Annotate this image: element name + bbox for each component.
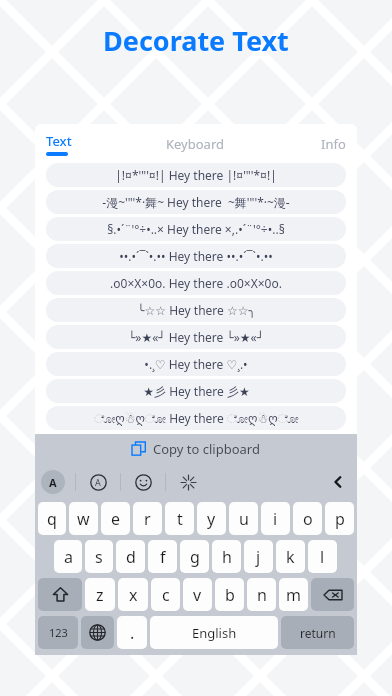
- staticText: Text: [46, 132, 72, 150]
- button[interactable]: w: [69, 502, 98, 535]
- button[interactable]: b: [215, 578, 244, 611]
- button[interactable]: m: [279, 578, 308, 611]
- button[interactable]: n: [247, 578, 276, 611]
- button[interactable]: q: [38, 502, 66, 535]
- button[interactable]: English: [150, 616, 278, 649]
- staticText: c: [162, 584, 170, 606]
- button[interactable]: ೋღ☃ღೋ Hey there ೋღ☃ღೋ: [46, 406, 346, 430]
- button[interactable]: •.¸♡ Hey there ♡¸.•: [46, 352, 346, 376]
- button[interactable]: Switch language: [81, 616, 114, 649]
- button[interactable]: l: [308, 540, 337, 573]
- button[interactable]: s: [85, 540, 113, 573]
- staticText: g: [190, 546, 200, 568]
- button[interactable]: §.•´¨'°÷•..× Hey there ×,.•´¨'°÷•..§: [46, 217, 346, 241]
- button[interactable]: ★彡 Hey there 彡★: [46, 379, 346, 403]
- staticText: a: [64, 546, 73, 568]
- button[interactable]: y: [197, 502, 226, 535]
- button[interactable]: t: [165, 502, 194, 535]
- staticText: Decorate Text: [103, 22, 289, 59]
- button[interactable]: k: [276, 540, 305, 573]
- staticText: d: [126, 546, 136, 568]
- staticText: r: [144, 508, 151, 530]
- staticText: ╰☆☆ Hey there ☆☆╮: [137, 302, 256, 318]
- button[interactable]: Emoticons: [131, 470, 155, 494]
- staticText: j: [256, 546, 261, 568]
- staticText: s: [95, 546, 103, 568]
- button[interactable]: Backspace: [311, 578, 354, 611]
- button[interactable]: r: [133, 502, 162, 535]
- staticText: ••.•´¯`•.•• Hey there ••.•´¯`•.••: [119, 248, 273, 264]
- button[interactable]: └»★«┘ Hey there └»★«┘: [46, 325, 346, 349]
- button[interactable]: c: [151, 578, 180, 611]
- button[interactable]: p: [325, 502, 354, 535]
- staticText: ★彡 Hey there 彡★: [143, 383, 250, 399]
- button[interactable]: z: [85, 578, 115, 611]
- button[interactable]: Keyboard: [139, 135, 252, 153]
- button[interactable]: ••.•´¯`•.•• Hey there ••.•´¯`•.••: [46, 244, 346, 268]
- staticText: A: [49, 475, 57, 490]
- staticText: └»★«┘ Hey there └»★«┘: [128, 329, 264, 345]
- staticText: h: [222, 546, 232, 568]
- button[interactable]: .o0×X×0o. Hey there .o0×X×0o.: [46, 271, 346, 295]
- button[interactable]: a: [54, 540, 82, 573]
- staticText: p: [335, 508, 345, 530]
- staticText: o: [303, 508, 313, 530]
- staticText: t: [177, 508, 183, 530]
- staticText: y: [207, 508, 216, 530]
- staticText: Info: [321, 135, 346, 153]
- staticText: ೋღ☃ღೋ Hey there ೋღ☃ღೋ: [94, 410, 299, 426]
- staticText: z: [96, 584, 104, 606]
- button[interactable]: |!¤*'"'¤!| Hey there |!¤'"'*¤!|: [46, 163, 346, 187]
- button[interactable]: Plain text style: [41, 470, 65, 494]
- button[interactable]: Symbols: [176, 470, 200, 494]
- staticText: e: [111, 508, 121, 530]
- staticText: |!¤*'"'¤!| Hey there |!¤'"'*¤!|: [115, 167, 277, 183]
- staticText: Keyboard: [166, 135, 225, 153]
- staticText: x: [129, 584, 138, 606]
- button[interactable]: ╰☆☆ Hey there ☆☆╮: [46, 298, 346, 322]
- staticText: Copy to clipboard: [153, 440, 260, 458]
- staticText: b: [225, 584, 235, 606]
- button[interactable]: Text: [46, 132, 139, 156]
- button[interactable]: -漫~'"'*·舞~ Hey there ~舞'"'*·~漫-: [46, 190, 346, 214]
- button[interactable]: f: [148, 540, 177, 573]
- button[interactable]: .: [117, 616, 147, 649]
- staticText: 123: [49, 625, 68, 640]
- staticText: §.•´¨'°÷•..× Hey there ×,.•´¨'°÷•..§: [107, 221, 285, 237]
- button[interactable]: g: [180, 540, 209, 573]
- button[interactable]: e: [101, 502, 130, 535]
- staticText: A: [95, 476, 101, 488]
- button[interactable]: u: [229, 502, 258, 535]
- button[interactable]: 123: [38, 616, 78, 649]
- staticText: k: [286, 546, 295, 568]
- staticText: f: [160, 546, 166, 568]
- staticText: •.¸♡ Hey there ♡¸.•: [144, 356, 248, 372]
- staticText: w: [77, 508, 90, 530]
- button[interactable]: d: [116, 540, 145, 573]
- staticText: l: [320, 546, 325, 568]
- button[interactable]: j: [244, 540, 273, 573]
- button[interactable]: Copy to clipboard: [35, 434, 357, 464]
- staticText: n: [257, 584, 267, 606]
- button[interactable]: Back: [325, 469, 351, 495]
- staticText: English: [192, 624, 237, 642]
- button[interactable]: Shift: [38, 578, 82, 611]
- button[interactable]: h: [212, 540, 241, 573]
- button[interactable]: o: [293, 502, 322, 535]
- button[interactable]: v: [183, 578, 212, 611]
- button[interactable]: Info: [252, 135, 346, 153]
- staticText: return: [300, 625, 336, 641]
- staticText: .: [130, 622, 135, 644]
- button[interactable]: Circled letters: [86, 470, 110, 494]
- button[interactable]: return: [281, 616, 354, 649]
- button[interactable]: x: [118, 578, 148, 611]
- staticText: i: [273, 508, 278, 530]
- button[interactable]: i: [261, 502, 290, 535]
- staticText: -漫~'"'*·舞~ Hey there ~舞'"'*·~漫-: [102, 194, 290, 210]
- staticText: v: [193, 584, 202, 606]
- staticText: .o0×X×0o. Hey there .o0×X×0o.: [110, 275, 282, 291]
- staticText: u: [239, 508, 249, 530]
- staticText: q: [47, 508, 57, 530]
- staticText: m: [286, 584, 301, 606]
